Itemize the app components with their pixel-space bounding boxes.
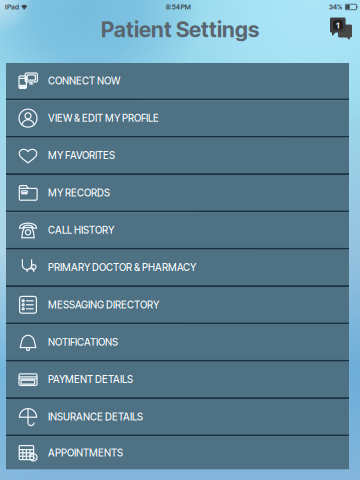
staticText: Patient Settings [101,17,259,42]
button[interactable]: CONNECT NOW [6,63,349,100]
button[interactable]: CALL HISTORY [6,212,349,250]
button[interactable]: MESSAGING DIRECTORY [6,287,349,324]
staticText: PRIMARY DOCTOR & PHARMACY [48,261,196,273]
button[interactable]: VIEW & EDIT MY PROFILE [6,100,349,138]
staticText: PAYMENT DETAILS [48,373,133,385]
staticText: MESSAGING DIRECTORY [48,299,159,311]
staticText: CONNECT NOW [48,75,120,87]
staticText: NOTIFICATIONS [48,336,118,348]
button[interactable]: MY FAVORITES [6,138,349,175]
button[interactable]: Messages [330,17,352,59]
button[interactable]: NOTIFICATIONS [6,324,349,362]
staticText: MY RECORDS [48,187,110,199]
button[interactable]: PAYMENT DETAILS [6,362,349,399]
staticText: iPad [5,3,19,11]
button[interactable]: PRIMARY DOCTOR & PHARMACY [6,250,349,287]
staticText: 1 [335,19,340,31]
staticText: 8:54 PM [166,3,191,11]
staticText: CALL HISTORY [48,224,114,236]
staticText: VIEW & EDIT MY PROFILE [48,112,159,124]
staticText: INSURANCE DETAILS [48,411,143,423]
button[interactable]: APPOINTMENTS [6,436,349,469]
button[interactable]: INSURANCE DETAILS [6,399,349,436]
button[interactable]: MY RECORDS [6,175,349,212]
staticText: MY FAVORITES [48,149,115,161]
staticText: 34% [329,3,343,11]
staticText: APPOINTMENTS [48,447,123,459]
